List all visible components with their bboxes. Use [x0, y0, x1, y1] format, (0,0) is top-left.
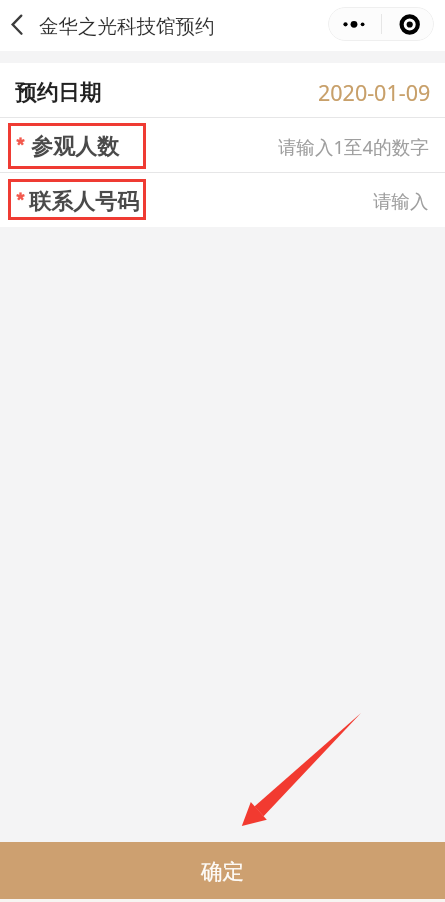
staticText: 参观人数	[31, 133, 119, 161]
button[interactable]: Back	[0, 8, 36, 44]
staticText: 联系人号码	[29, 188, 139, 216]
button[interactable]: More options	[328, 7, 381, 41]
staticText: 确定	[201, 858, 244, 885]
staticText: 2020-01-09	[318, 78, 431, 107]
staticText: 请输入	[373, 190, 429, 213]
button[interactable]: 联系人号码	[0, 173, 445, 227]
button[interactable]: Close	[381, 7, 434, 41]
staticText: 预约日期	[15, 79, 101, 106]
button[interactable]: 确定	[0, 842, 445, 899]
staticText: 金华之光科技馆预约	[39, 14, 215, 39]
staticText: 请输入1至4的数字	[278, 134, 429, 159]
button[interactable]: 预约日期	[0, 63, 445, 117]
button[interactable]: 参观人数	[0, 118, 445, 172]
